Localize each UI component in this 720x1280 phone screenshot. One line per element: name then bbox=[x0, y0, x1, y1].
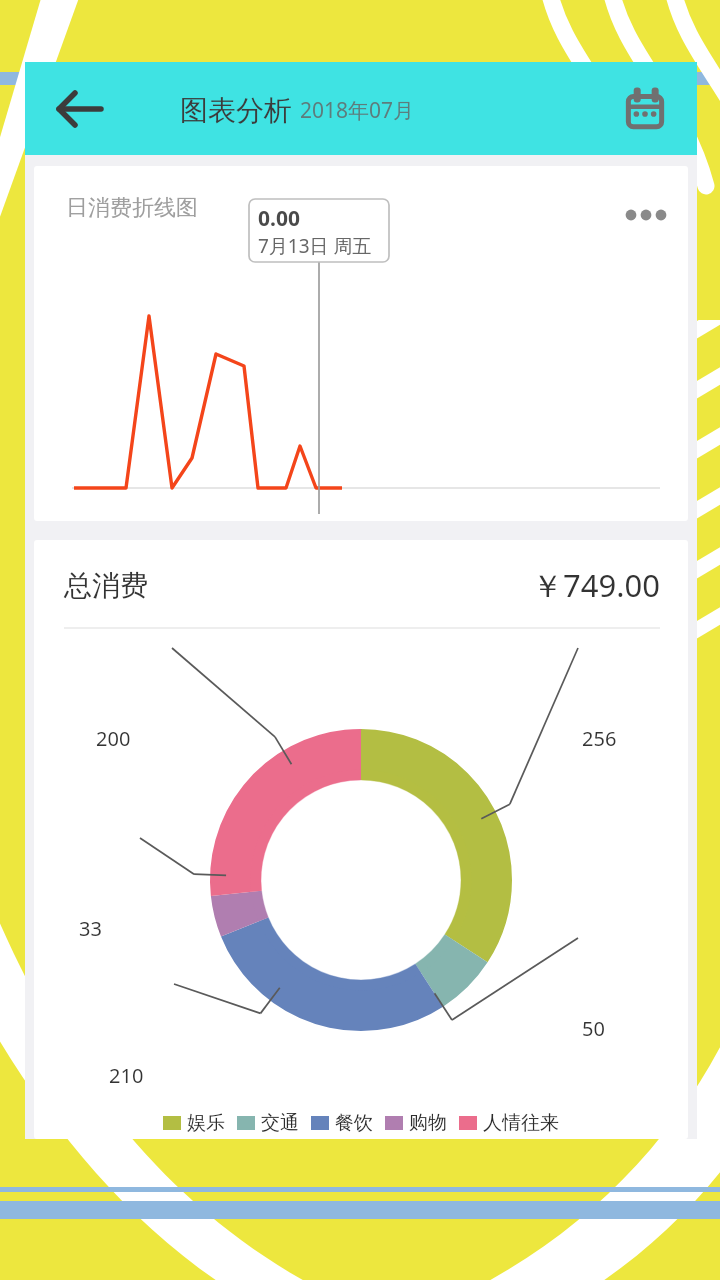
staticText: 200 bbox=[96, 725, 131, 752]
button[interactable]: Back bbox=[53, 82, 107, 136]
staticText: 总消费 bbox=[64, 568, 148, 603]
staticText: 50 bbox=[582, 1015, 605, 1042]
staticText: 图表分析 bbox=[180, 93, 292, 128]
staticText: 33 bbox=[79, 915, 102, 942]
staticText: 购物 bbox=[409, 1111, 447, 1135]
staticText: 210 bbox=[109, 1062, 144, 1089]
staticText: 娱乐 bbox=[187, 1111, 225, 1135]
staticText: 交通 bbox=[261, 1111, 299, 1135]
button[interactable]: 交通 bbox=[237, 1111, 299, 1135]
staticText: 餐饮 bbox=[335, 1111, 373, 1135]
button[interactable]: Select month bbox=[619, 83, 671, 135]
staticText: 0.00 bbox=[258, 204, 300, 233]
button[interactable]: 总消费 bbox=[34, 540, 688, 1139]
staticText: ￥749.00 bbox=[532, 564, 660, 606]
staticText: 7月13日 周五 bbox=[258, 233, 372, 259]
staticText: 256 bbox=[582, 725, 617, 752]
button[interactable]: 日消费折线图 bbox=[34, 166, 688, 521]
button[interactable]: 人情往来 bbox=[459, 1111, 559, 1135]
button[interactable]: More options bbox=[622, 192, 668, 238]
button[interactable]: 娱乐 bbox=[163, 1111, 225, 1135]
staticText: 日消费折线图 bbox=[66, 194, 198, 222]
staticText: 人情往来 bbox=[483, 1111, 559, 1135]
staticText: 2018年07月 bbox=[300, 96, 415, 125]
button[interactable]: 购物 bbox=[385, 1111, 447, 1135]
button[interactable]: 餐饮 bbox=[311, 1111, 373, 1135]
